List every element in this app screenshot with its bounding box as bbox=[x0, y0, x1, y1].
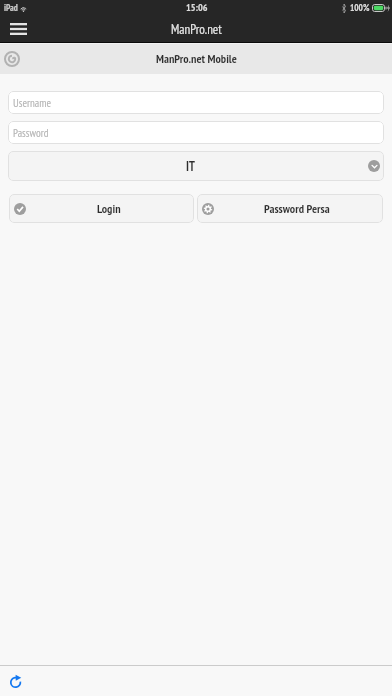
button[interactable]: Username bbox=[8, 91, 384, 114]
staticText: ManPro.net bbox=[171, 21, 222, 38]
staticText: IT bbox=[186, 158, 195, 174]
button[interactable]: Password Persa bbox=[197, 194, 383, 223]
staticText: 15:06 bbox=[186, 1, 208, 14]
button[interactable]: Login bbox=[9, 194, 194, 223]
staticText: Password bbox=[13, 126, 49, 140]
staticText: Username bbox=[13, 96, 51, 110]
button[interactable]: Password bbox=[8, 121, 384, 144]
staticText: iPad bbox=[4, 2, 18, 14]
button[interactable]: IT bbox=[8, 151, 384, 181]
button[interactable]: Refresh bbox=[5, 670, 27, 692]
staticText: Password Persa bbox=[264, 201, 330, 217]
staticText: ManPro.net Mobile bbox=[156, 51, 237, 67]
staticText: Login bbox=[97, 201, 121, 217]
button[interactable]: Menu bbox=[0, 15, 37, 43]
staticText: 100% bbox=[350, 2, 370, 14]
button[interactable]: Reload bbox=[1, 48, 23, 70]
